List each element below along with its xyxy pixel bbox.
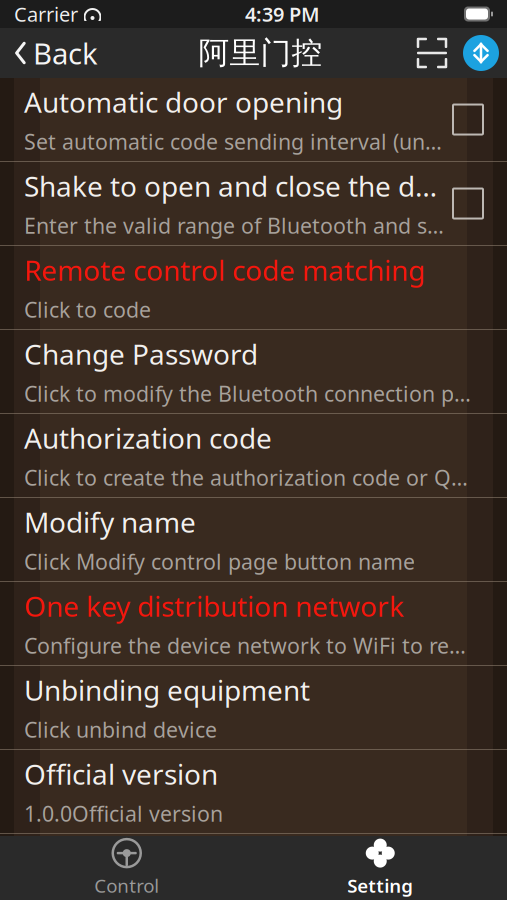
staticText: Click unbind device xyxy=(24,715,217,744)
button[interactable]: One key distribution network xyxy=(0,582,507,665)
button[interactable]: Automatic door opening xyxy=(0,78,507,161)
button[interactable]: Bluetooth xyxy=(455,28,507,78)
button[interactable]: Change Password xyxy=(0,330,507,413)
staticText: Automatic door opening xyxy=(24,83,343,120)
staticText: 1.0.0Official version xyxy=(24,799,223,828)
staticText: Setting xyxy=(347,873,413,898)
button[interactable]: Scan QR code xyxy=(409,28,455,78)
button[interactable]: Setting xyxy=(253,836,507,900)
staticText: Modify name xyxy=(24,503,196,540)
staticText: Enter the valid range of Bluetooth and s… xyxy=(24,211,445,240)
staticText: Control xyxy=(94,873,159,898)
staticText: Remote control code matching xyxy=(24,251,425,288)
button[interactable]: Shake to open and close the door automat… xyxy=(0,162,507,245)
button[interactable]: Unbinding equipment xyxy=(0,666,507,749)
staticText: Click to code xyxy=(24,295,151,324)
staticText: Change Password xyxy=(24,335,258,372)
button[interactable]: Remote control code matching xyxy=(0,246,507,329)
staticText: Shake to open and close the door automat… xyxy=(24,167,445,204)
button[interactable]: Official version xyxy=(0,750,507,833)
staticText: Set automatic code sending interval (uni… xyxy=(24,127,445,156)
staticText: 4:39 PM xyxy=(245,1,320,27)
button[interactable]: Back xyxy=(0,28,112,78)
staticText: Click to modify the Bluetooth connection… xyxy=(24,379,475,408)
staticText: Click Modify control page button name xyxy=(24,547,415,576)
staticText: Back xyxy=(33,33,98,72)
button[interactable]: Modify name xyxy=(0,498,507,581)
staticText: Carrier xyxy=(14,1,78,27)
staticText: 阿里门控 xyxy=(198,34,322,72)
button[interactable]: Control xyxy=(0,836,253,900)
staticText: Click to create the authorization code o… xyxy=(24,463,475,492)
staticText: Unbinding equipment xyxy=(24,671,310,708)
staticText: One key distribution network xyxy=(24,587,404,624)
staticText: Authorization code xyxy=(24,419,272,456)
staticText: Configure the device network to WiFi to … xyxy=(24,631,475,660)
button[interactable]: Authorization code xyxy=(0,414,507,497)
staticText: Official version xyxy=(24,755,218,792)
